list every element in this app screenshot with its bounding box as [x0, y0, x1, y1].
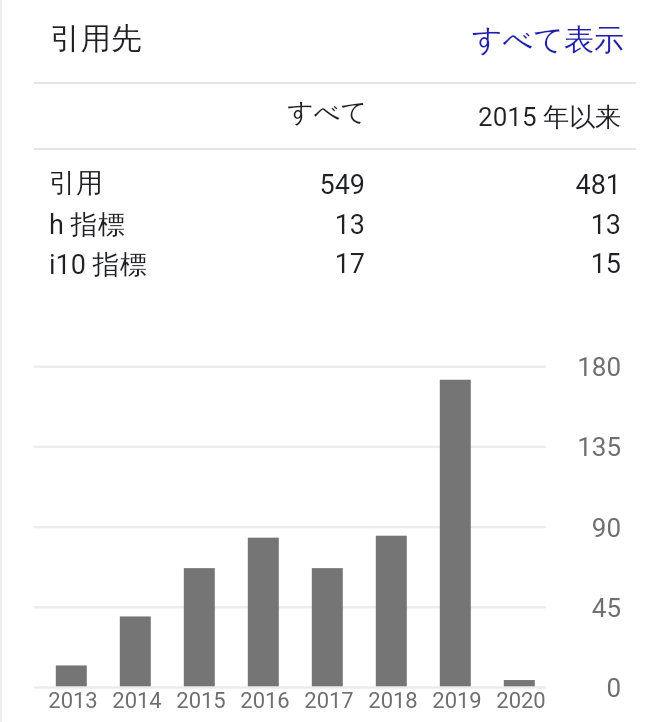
button[interactable]: すべて表示	[452, 0, 636, 82]
staticText: すべて表示	[452, 21, 624, 59]
staticText: 2013	[41, 688, 105, 714]
staticText: 2020	[489, 688, 553, 714]
staticText: すべて	[107, 96, 367, 129]
staticText: 180	[521, 352, 621, 382]
staticText: 2015	[169, 688, 233, 714]
button[interactable]: 引用	[0, 158, 648, 198]
staticText: 2018	[361, 688, 425, 714]
staticText: 0	[521, 673, 621, 703]
staticText: i10 指標	[49, 248, 147, 282]
staticText: h 指標	[49, 208, 125, 242]
staticText: 135	[521, 432, 621, 462]
staticText: 17	[105, 248, 365, 280]
staticText: 引用先	[50, 20, 142, 58]
staticText: 481	[361, 169, 621, 201]
staticText: 2015 年以来	[361, 101, 621, 134]
staticText: 2016	[233, 688, 297, 714]
staticText: 90	[521, 513, 621, 543]
staticText: 45	[521, 593, 621, 623]
button[interactable]: 引用先	[34, 0, 234, 82]
staticText: 549	[105, 169, 365, 201]
staticText: 引用	[49, 166, 103, 200]
button[interactable]: i10 指標	[0, 237, 648, 277]
staticText: 13	[105, 209, 365, 241]
staticText: 15	[361, 248, 621, 280]
button[interactable]: h 指標	[0, 198, 648, 238]
staticText: 2019	[425, 688, 489, 714]
staticText: 13	[361, 209, 621, 241]
staticText: 2017	[297, 688, 361, 714]
staticText: 2014	[105, 688, 169, 714]
